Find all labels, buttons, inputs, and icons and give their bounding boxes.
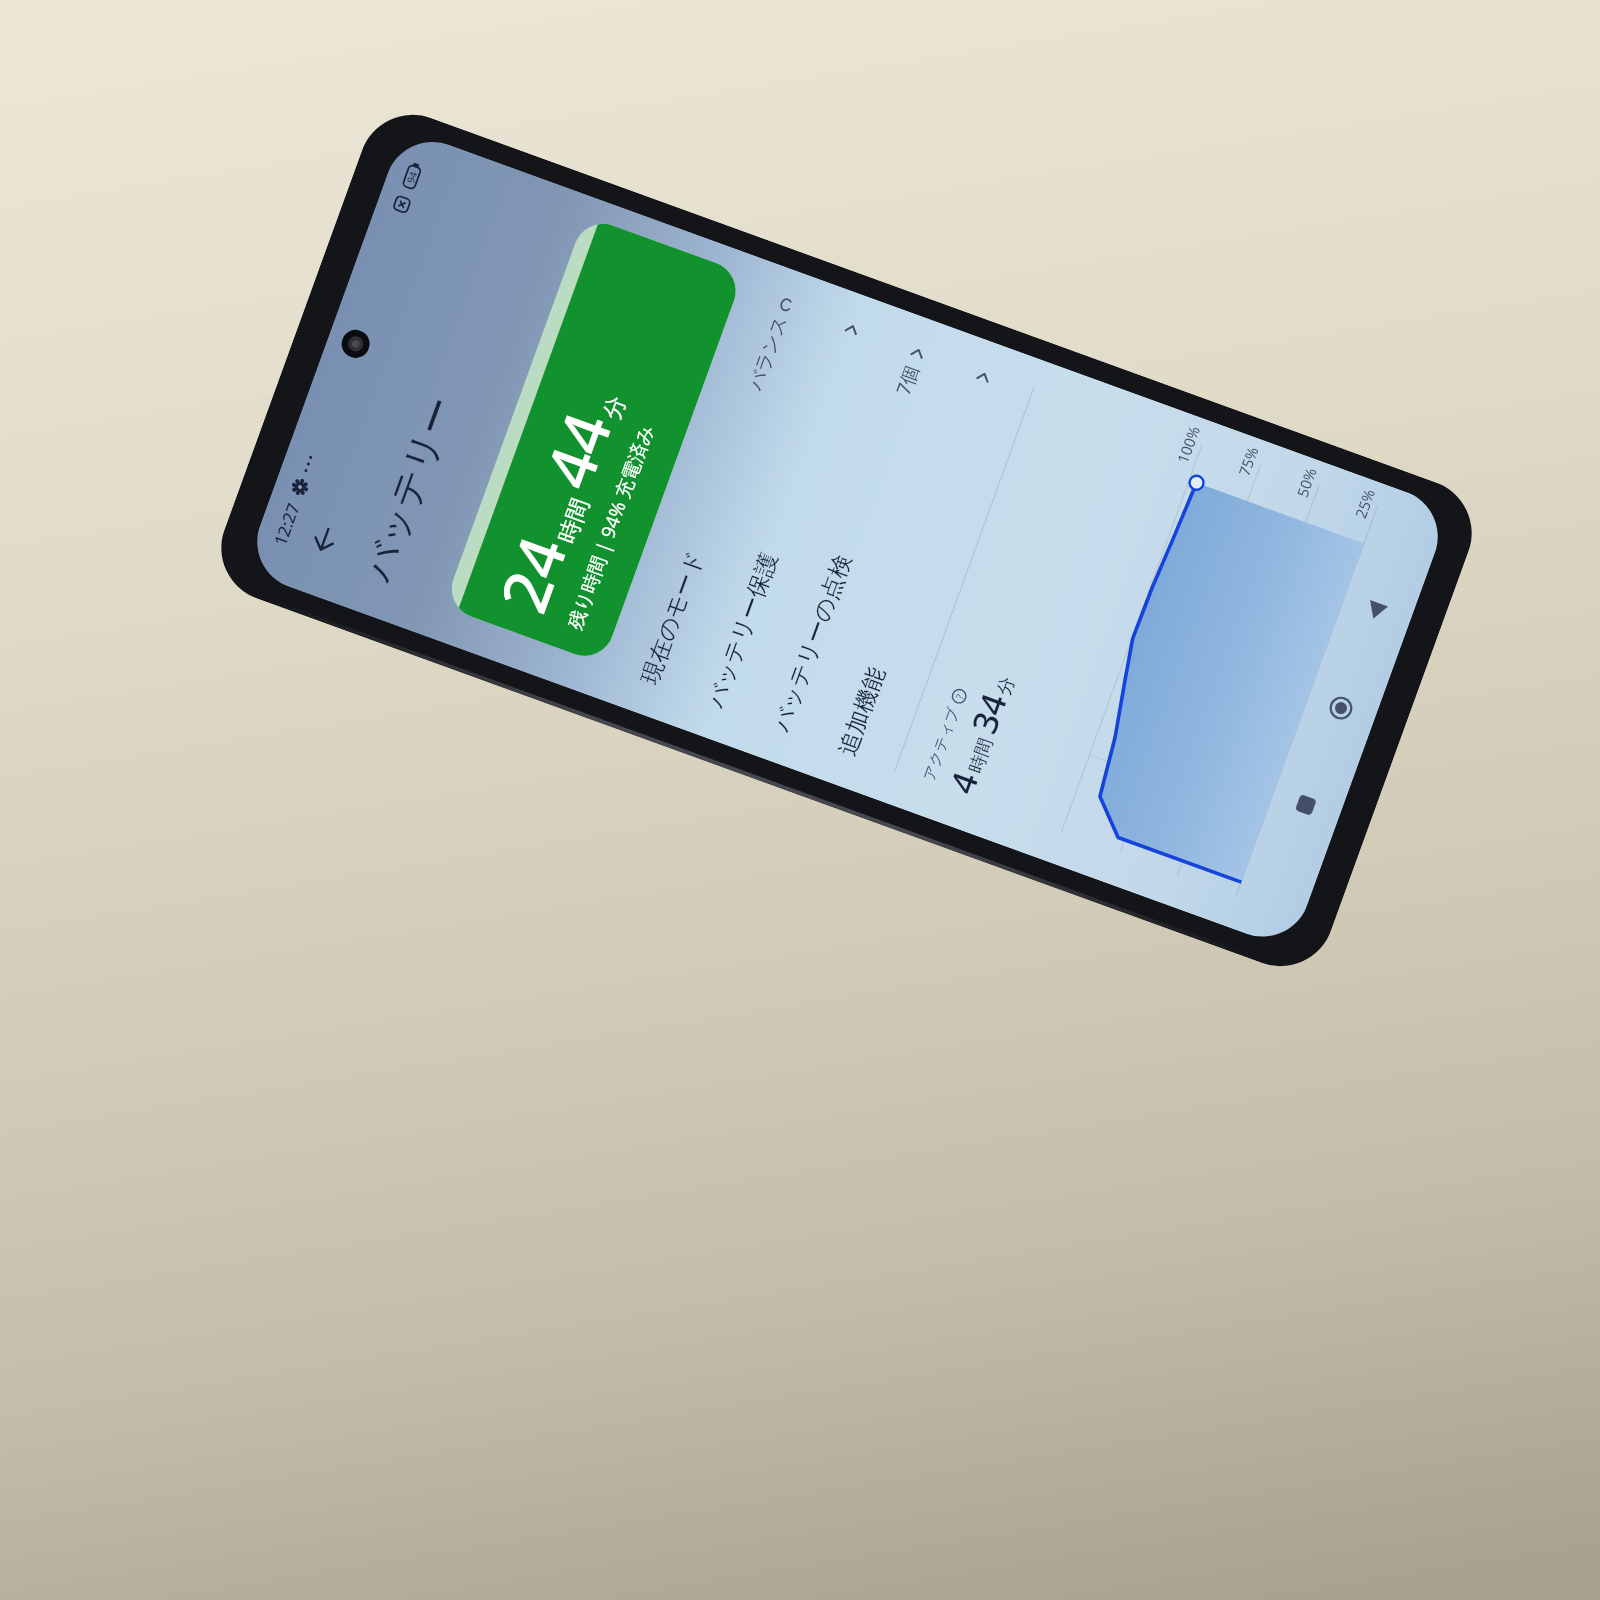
button[interactable]: 追加機能 (802, 331, 1028, 797)
staticText: 追加機能 (833, 663, 891, 760)
staticText: 100% (1172, 422, 1204, 466)
staticText: 時間 (964, 735, 998, 777)
staticText: バランス (744, 312, 793, 394)
staticText: 44 (524, 400, 631, 499)
button[interactable]: 24 (443, 215, 744, 664)
staticText: 75% (1234, 444, 1263, 479)
staticText: 12:27 (268, 499, 305, 549)
staticText: 分 (992, 674, 1020, 699)
button[interactable]: 現在のモード (605, 259, 831, 725)
button[interactable]: Home (1304, 672, 1376, 744)
staticText: 分 (597, 392, 632, 423)
staticText: 時間 (552, 494, 595, 547)
staticText: 現在のモード (635, 547, 710, 688)
button[interactable]: Recents (1269, 769, 1341, 841)
staticText: 7個 (890, 362, 925, 399)
button[interactable]: バッテリー保護 (670, 283, 896, 749)
staticText: 34 (960, 687, 1017, 739)
button[interactable]: Back (293, 509, 355, 571)
staticText: アクティブ (920, 705, 964, 784)
staticText: バッテリーの点検 (767, 550, 858, 736)
staticText: 25% (1350, 486, 1379, 521)
staticText: 94 (403, 169, 420, 185)
button[interactable]: Back (1340, 576, 1411, 647)
staticText: ? (952, 692, 967, 701)
staticText: 24 (479, 524, 586, 623)
button[interactable]: バッテリーの点検 (736, 307, 962, 773)
staticText: 4 (938, 765, 989, 800)
staticText: 50% (1292, 465, 1321, 500)
staticText: バッテリー保護 (701, 548, 784, 712)
staticText: バッテリー (354, 389, 465, 588)
staticText: 残り時間 | 94% 充電済み (561, 421, 660, 633)
